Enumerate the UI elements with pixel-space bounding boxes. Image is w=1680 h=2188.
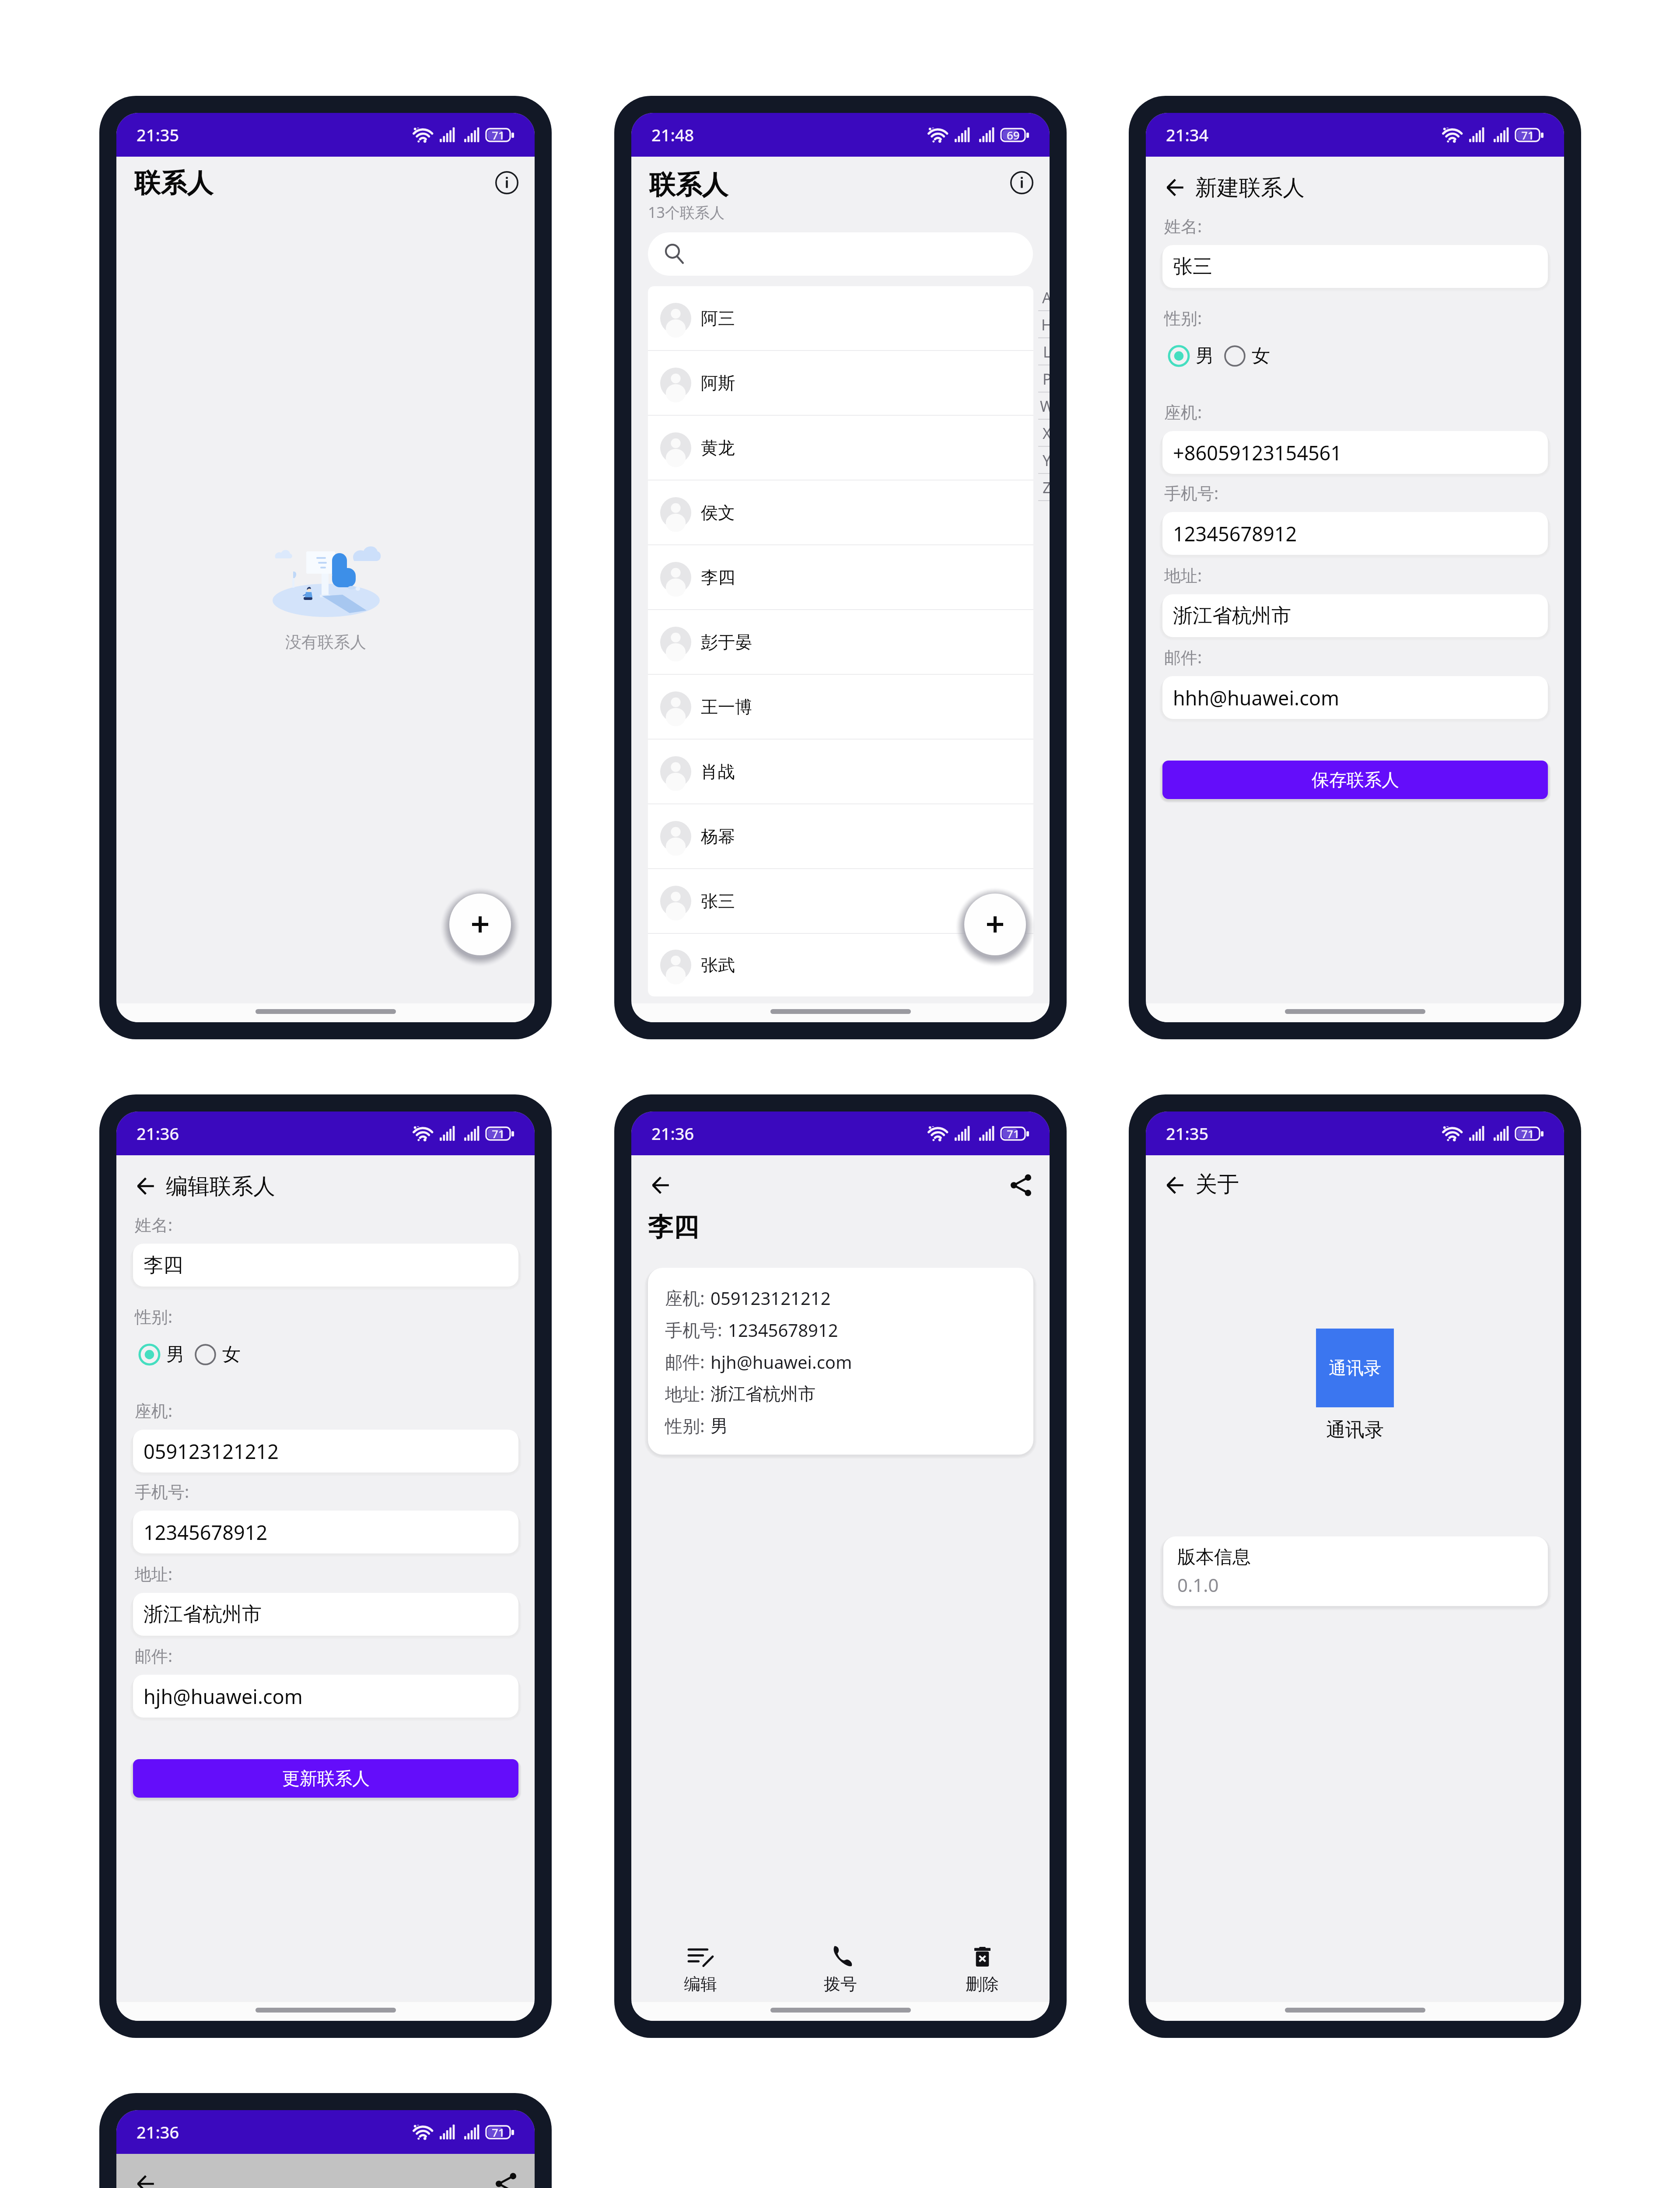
staticText: 座机:: [135, 1399, 173, 1422]
staticText: 李四: [143, 1253, 183, 1278]
button[interactable]: +86059123154561: [1162, 431, 1548, 474]
staticText: Y: [1043, 450, 1050, 470]
staticText: 新建联系人: [1195, 174, 1305, 202]
staticText: +86059123154561: [1173, 439, 1342, 466]
staticText: 没有联系人: [285, 632, 366, 652]
staticText: 手机号:: [665, 1318, 722, 1342]
button[interactable]: 彭于晏: [648, 610, 1033, 674]
button[interactable]: 浙江省杭州市: [1162, 594, 1548, 637]
button[interactable]: 男: [1168, 344, 1214, 368]
staticText: 浙江省杭州市: [1173, 603, 1291, 628]
staticText: 拨号: [824, 1974, 857, 1995]
staticText: 女: [1252, 344, 1270, 368]
staticText: 座机:: [665, 1286, 705, 1310]
button[interactable]: 张武: [648, 934, 1033, 996]
button[interactable]: 男: [138, 1343, 185, 1366]
button[interactable]: Back: [1166, 1176, 1184, 1194]
staticText: 地址:: [665, 1382, 705, 1406]
staticText: L: [1043, 342, 1050, 362]
button[interactable]: 肖战: [648, 740, 1033, 803]
staticText: 邮件:: [135, 1644, 173, 1667]
button[interactable]: Z: [1038, 474, 1050, 501]
staticText: 座机:: [1164, 400, 1202, 423]
staticText: 邮件:: [1164, 645, 1202, 668]
button[interactable]: hhh@huawei.com: [1162, 676, 1548, 719]
staticText: 059123121212: [710, 1286, 831, 1310]
button[interactable]: Back: [136, 1177, 154, 1195]
staticText: 21:36: [136, 2121, 179, 2143]
staticText: 王一博: [701, 696, 752, 718]
button[interactable]: Share: [494, 2172, 517, 2188]
button[interactable]: 李四: [133, 1244, 518, 1287]
staticText: 阿三: [701, 308, 735, 329]
staticText: hjh@huawei.com: [143, 1683, 303, 1710]
staticText: 71: [492, 127, 505, 143]
staticText: 男: [1196, 344, 1214, 368]
button[interactable]: 阿斯: [648, 351, 1033, 415]
button[interactable]: 保存联系人: [1162, 761, 1548, 799]
staticText: 联系人: [649, 168, 728, 202]
button[interactable]: Back: [136, 2175, 154, 2188]
staticText: 71: [1521, 127, 1534, 143]
button[interactable]: 版本信息: [1163, 1536, 1548, 1606]
staticText: 浙江省杭州市: [710, 1383, 815, 1405]
button[interactable]: About: [1006, 167, 1037, 198]
button[interactable]: 女: [1224, 344, 1270, 368]
button[interactable]: Back: [1166, 179, 1184, 196]
button[interactable]: H: [1038, 311, 1050, 338]
staticText: 侯文: [701, 502, 735, 523]
staticText: 21:48: [651, 123, 694, 146]
button[interactable]: 侯文: [648, 480, 1033, 544]
staticText: 性别:: [665, 1413, 705, 1438]
staticText: 姓名:: [1164, 214, 1202, 237]
staticText: hjh@huawei.com: [710, 1350, 852, 1374]
button[interactable]: 更新联系人: [133, 1759, 518, 1798]
button[interactable]: 李四: [648, 545, 1033, 609]
button[interactable]: 12345678912: [1162, 512, 1548, 555]
button[interactable]: 黄龙: [648, 416, 1033, 480]
button[interactable]: 12345678912: [133, 1511, 518, 1553]
staticText: 性别:: [1164, 306, 1202, 329]
button[interactable]: About: [491, 167, 522, 198]
staticText: 21:35: [136, 123, 179, 146]
staticText: 21:35: [1166, 1122, 1209, 1145]
button[interactable]: 删除: [943, 1942, 1022, 1998]
button[interactable]: 女: [194, 1343, 241, 1366]
button[interactable]: 阿三: [648, 286, 1033, 350]
staticText: 71: [492, 2125, 505, 2140]
button[interactable]: Search contacts: [648, 232, 1033, 276]
button[interactable]: A: [1038, 284, 1050, 311]
button[interactable]: Add contact: [449, 894, 511, 955]
button[interactable]: 浙江省杭州市: [133, 1593, 518, 1636]
staticText: 女: [222, 1343, 241, 1366]
button[interactable]: P: [1038, 365, 1050, 393]
button[interactable]: 059123121212: [133, 1430, 518, 1473]
staticText: 男: [710, 1415, 728, 1437]
button[interactable]: Y: [1038, 447, 1050, 474]
staticText: 71: [492, 1126, 505, 1141]
staticText: 李四: [648, 1211, 699, 1243]
button[interactable]: 王一博: [648, 675, 1033, 739]
button[interactable]: Back: [651, 1176, 669, 1194]
button[interactable]: 张三: [648, 869, 1033, 933]
button[interactable]: W: [1038, 393, 1050, 420]
staticText: Z: [1043, 477, 1050, 498]
button[interactable]: 拨号: [801, 1942, 880, 1998]
staticText: 编辑: [684, 1974, 717, 1995]
staticText: 张武: [701, 954, 735, 976]
button[interactable]: Share: [1009, 1174, 1032, 1196]
button[interactable]: 编辑: [661, 1942, 740, 1998]
button[interactable]: X: [1038, 420, 1050, 447]
staticText: 21:36: [136, 1122, 179, 1145]
staticText: 张三: [701, 891, 735, 912]
staticText: hhh@huawei.com: [1173, 684, 1340, 711]
staticText: 男: [166, 1343, 185, 1366]
button[interactable]: Add contact: [964, 894, 1026, 955]
button[interactable]: 张三: [1162, 245, 1548, 288]
staticText: 李四: [701, 567, 735, 588]
staticText: 版本信息: [1177, 1546, 1251, 1569]
staticText: 姓名:: [135, 1213, 173, 1236]
button[interactable]: 杨幂: [648, 804, 1033, 868]
button[interactable]: L: [1038, 338, 1050, 365]
button[interactable]: hjh@huawei.com: [133, 1675, 518, 1718]
